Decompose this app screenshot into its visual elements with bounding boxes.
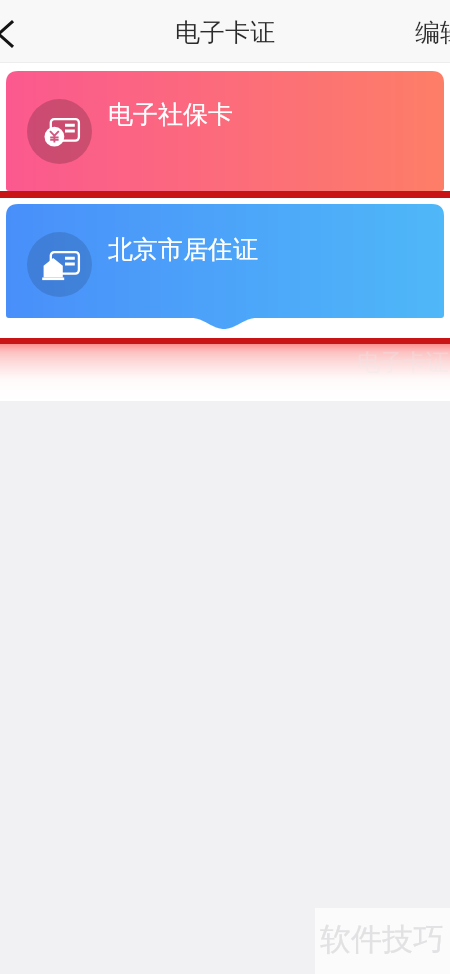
staticText: 软件技巧: [320, 920, 444, 959]
button[interactable]: 北京市居住证: [6, 204, 444, 330]
staticText: 北京市居住证: [108, 234, 258, 265]
button[interactable]: Back: [0, 11, 29, 57]
staticText: 电子社保卡: [108, 99, 233, 130]
button[interactable]: 编辑: [413, 17, 450, 48]
staticText: 电子卡证: [175, 17, 275, 48]
staticText: 电子卡证: [357, 348, 449, 377]
button[interactable]: 电子社保卡: [6, 71, 444, 191]
